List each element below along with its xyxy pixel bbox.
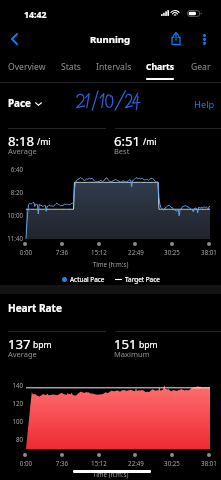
staticText: 0:00 [12,248,40,256]
button[interactable]: Stats [49,57,93,81]
staticText: 100 [0,417,23,425]
staticText: Running [90,33,131,46]
staticText: 6:51 [114,132,141,150]
staticText: Target Pace [125,275,160,284]
staticText: Charts [146,61,175,73]
button[interactable]: Gear [179,57,221,81]
staticText: 151 [114,335,137,353]
button[interactable]: Back [0,27,28,50]
staticText: 120 [0,399,23,407]
staticText: 6:40 [0,165,23,173]
staticText: 22:49 [122,459,150,467]
button[interactable]: More options [194,29,214,49]
staticText: Time (h:m:s) [0,470,221,478]
staticText: 38:01 [195,459,221,467]
button[interactable]: Charts [138,57,182,81]
staticText: bpm [139,339,158,351]
staticText: 137 [8,335,31,353]
staticText: /mi [37,136,51,148]
staticText: Average [8,349,37,359]
staticText: Pace [8,97,31,110]
staticText: 8:18 [8,132,35,150]
staticText: 15:12 [85,248,113,256]
staticText: 30:25 [158,459,186,467]
staticText: /mi [143,136,157,148]
staticText: 140 [0,381,23,389]
staticText: Actual Pace [70,275,105,284]
staticText: 10:00 [0,211,23,219]
staticText: Time (h:m:s) [0,260,221,268]
staticText: 30:25 [158,248,186,256]
staticText: Gear [191,61,211,73]
staticText: 22:49 [122,248,150,256]
staticText: 15:12 [85,459,113,467]
staticText: 80 [0,435,23,443]
staticText: Maximum [114,349,150,359]
staticText: 38:01 [195,248,221,256]
button[interactable]: Pace [8,97,42,110]
staticText: Average [8,146,37,156]
staticText: Best [114,146,130,156]
button[interactable]: Help [194,98,215,111]
button[interactable]: Overview [5,57,49,81]
staticText: bpm [33,339,52,351]
staticText: Stats [61,61,81,73]
staticText: 11:40 [0,234,23,242]
staticText: Intervals [96,61,132,73]
staticText: 14:42 [24,9,47,21]
staticText: 0:00 [12,459,40,467]
button[interactable]: Intervals [92,57,136,81]
button[interactable]: Share [164,27,187,50]
staticText: 7:36 [48,459,76,467]
staticText: Overview [8,61,46,73]
staticText: 8:20 [0,188,23,196]
staticText: Heart Rate [8,301,62,315]
staticText: 7:36 [48,248,76,256]
